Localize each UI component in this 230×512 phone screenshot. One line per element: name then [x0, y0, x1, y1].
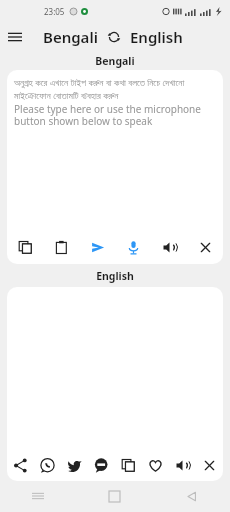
- button[interactable]: Home: [76, 483, 153, 509]
- staticText: 23:05: [44, 6, 65, 17]
- button[interactable]: Speak: [169, 449, 196, 481]
- button[interactable]: Share: [7, 449, 34, 481]
- button[interactable]: Clear: [196, 449, 223, 481]
- button[interactable]: Menu: [0, 22, 30, 52]
- button[interactable]: Twitter: [61, 449, 88, 481]
- button[interactable]: Copy: [7, 230, 43, 264]
- button[interactable]: Swap languages: [105, 28, 123, 46]
- button[interactable]: WhatsApp: [34, 449, 61, 481]
- staticText: English: [0, 269, 230, 283]
- button[interactable]: Copy: [115, 449, 142, 481]
- staticText: Bengali: [43, 27, 98, 47]
- staticText: Please type here or use the microphone b…: [14, 102, 216, 128]
- button[interactable]: SMS: [88, 449, 115, 481]
- button[interactable]: Back: [153, 483, 230, 509]
- button[interactable]: Paste: [43, 230, 79, 264]
- staticText: English: [130, 27, 183, 47]
- button[interactable]: Speak: [151, 230, 187, 264]
- button[interactable]: English: [130, 27, 183, 47]
- staticText: অনুগ্রহ করে এখানে টাইপ করুন বা কথা বলতে …: [14, 76, 216, 102]
- button[interactable]: Clear: [187, 230, 223, 264]
- button[interactable]: Translate: [79, 230, 115, 264]
- button[interactable]: Recents: [0, 483, 76, 509]
- button[interactable]: Microphone: [115, 230, 151, 264]
- button[interactable]: Favorite: [142, 449, 169, 481]
- staticText: Bengali: [0, 54, 230, 68]
- button[interactable]: Bengali: [43, 27, 98, 47]
